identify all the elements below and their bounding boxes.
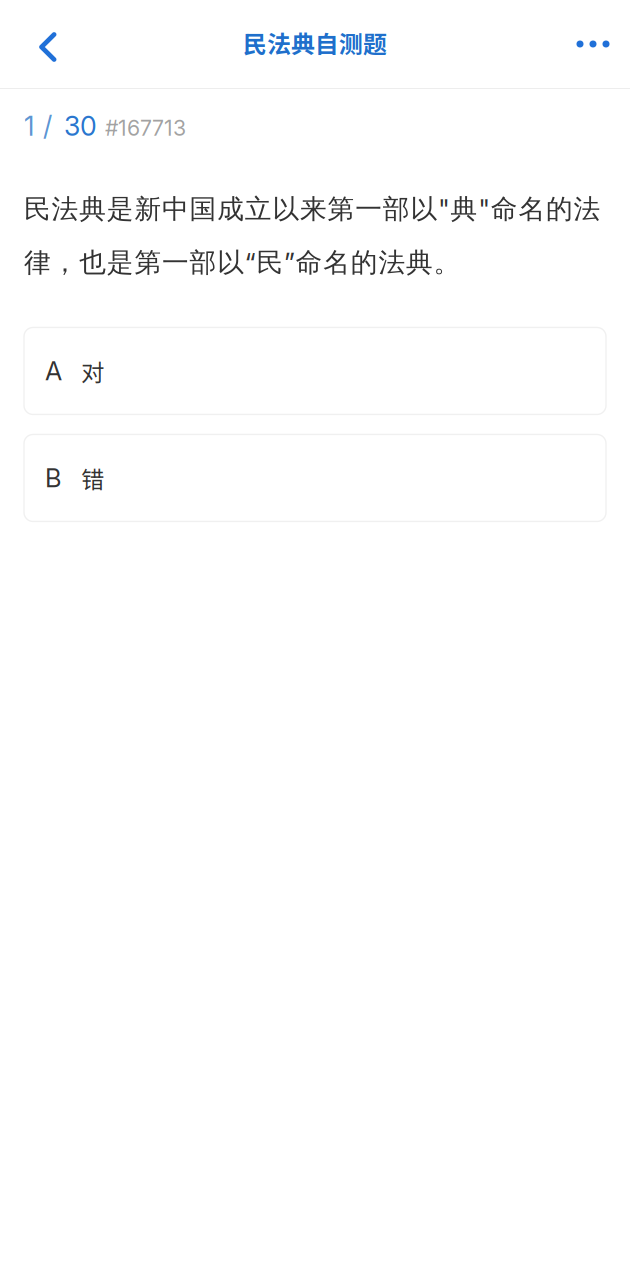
staticText: #167713 bbox=[105, 115, 186, 141]
button[interactable]: More options bbox=[565, 11, 621, 77]
staticText: B bbox=[45, 463, 61, 493]
staticText: 30 bbox=[64, 110, 97, 142]
button[interactable]: Back bbox=[20, 11, 76, 77]
button[interactable]: A 对 bbox=[24, 327, 606, 414]
staticText: 民法典自测题 bbox=[243, 25, 387, 60]
button[interactable]: B 错 bbox=[24, 434, 606, 521]
staticText: A bbox=[45, 356, 62, 386]
staticText: 民法典是新中国成立以来第一部以"典"命名的法律，也是第一部以“民”命名的法典。 bbox=[24, 192, 601, 279]
staticText: 错 bbox=[81, 461, 104, 495]
staticText: 对 bbox=[81, 354, 104, 388]
staticText: / bbox=[43, 110, 52, 142]
staticText: 1 bbox=[24, 110, 34, 142]
